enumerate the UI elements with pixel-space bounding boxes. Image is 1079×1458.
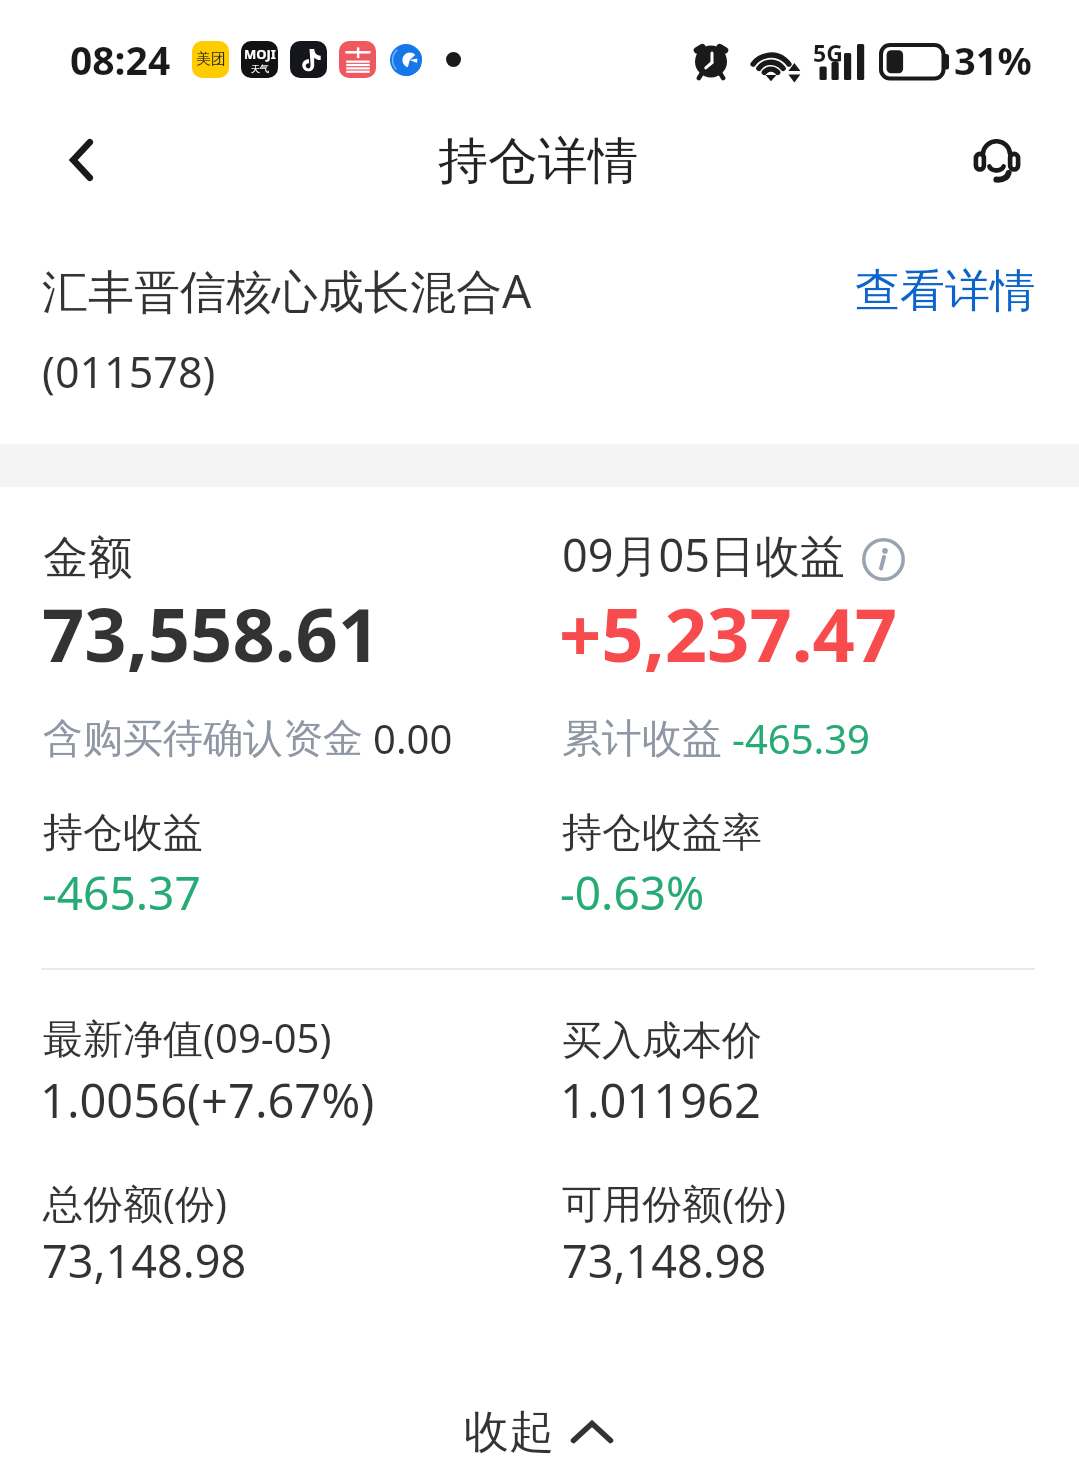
button[interactable]: 收起	[440, 1390, 637, 1458]
staticText: 持仓收益率	[562, 807, 762, 857]
staticText: -0.63%	[560, 861, 705, 924]
staticText: 汇丰晋信核心成长混合A	[42, 259, 532, 322]
staticText: 1.0056(+7.67%)	[40, 1068, 375, 1132]
staticText: 73,558.61	[42, 583, 381, 684]
staticText: 0.00	[373, 711, 453, 765]
staticText: 73,148.98	[42, 1230, 247, 1291]
button[interactable]: 查看详情	[845, 253, 1045, 330]
staticText: 收起	[464, 1404, 554, 1458]
button[interactable]: Back	[45, 124, 117, 196]
staticText: 查看详情	[855, 263, 1035, 320]
staticText: 可用份额(份)	[562, 1175, 786, 1230]
staticText: 持仓详情	[438, 130, 638, 193]
staticText: 累计收益	[562, 713, 722, 763]
button[interactable]: Customer service	[961, 124, 1033, 196]
staticText: (011578)	[42, 342, 216, 401]
staticText: MOJI	[244, 45, 276, 63]
staticText: 买入成本价	[562, 1015, 762, 1065]
staticText: 73,148.98	[562, 1230, 767, 1291]
staticText: 5G	[813, 37, 843, 68]
staticText: 持仓收益	[43, 807, 203, 857]
staticText: 含购买待确认资金	[43, 713, 363, 763]
staticText: 天气	[251, 63, 269, 74]
staticText: 总份额(份)	[43, 1175, 227, 1230]
staticText: 31%	[954, 34, 1032, 86]
staticText: -465.37	[42, 861, 201, 924]
staticText: 美团	[196, 50, 226, 69]
staticText: 金额	[43, 530, 133, 587]
staticText: 09月05日收益	[562, 524, 845, 585]
staticText: 08:24	[70, 33, 171, 86]
staticText: 最新净值(09-05)	[43, 1010, 332, 1065]
button[interactable]: Info	[862, 538, 904, 580]
staticText: +5,237.47	[559, 583, 898, 684]
staticText: 1.011962	[560, 1068, 761, 1132]
staticText: -465.39	[732, 711, 870, 765]
